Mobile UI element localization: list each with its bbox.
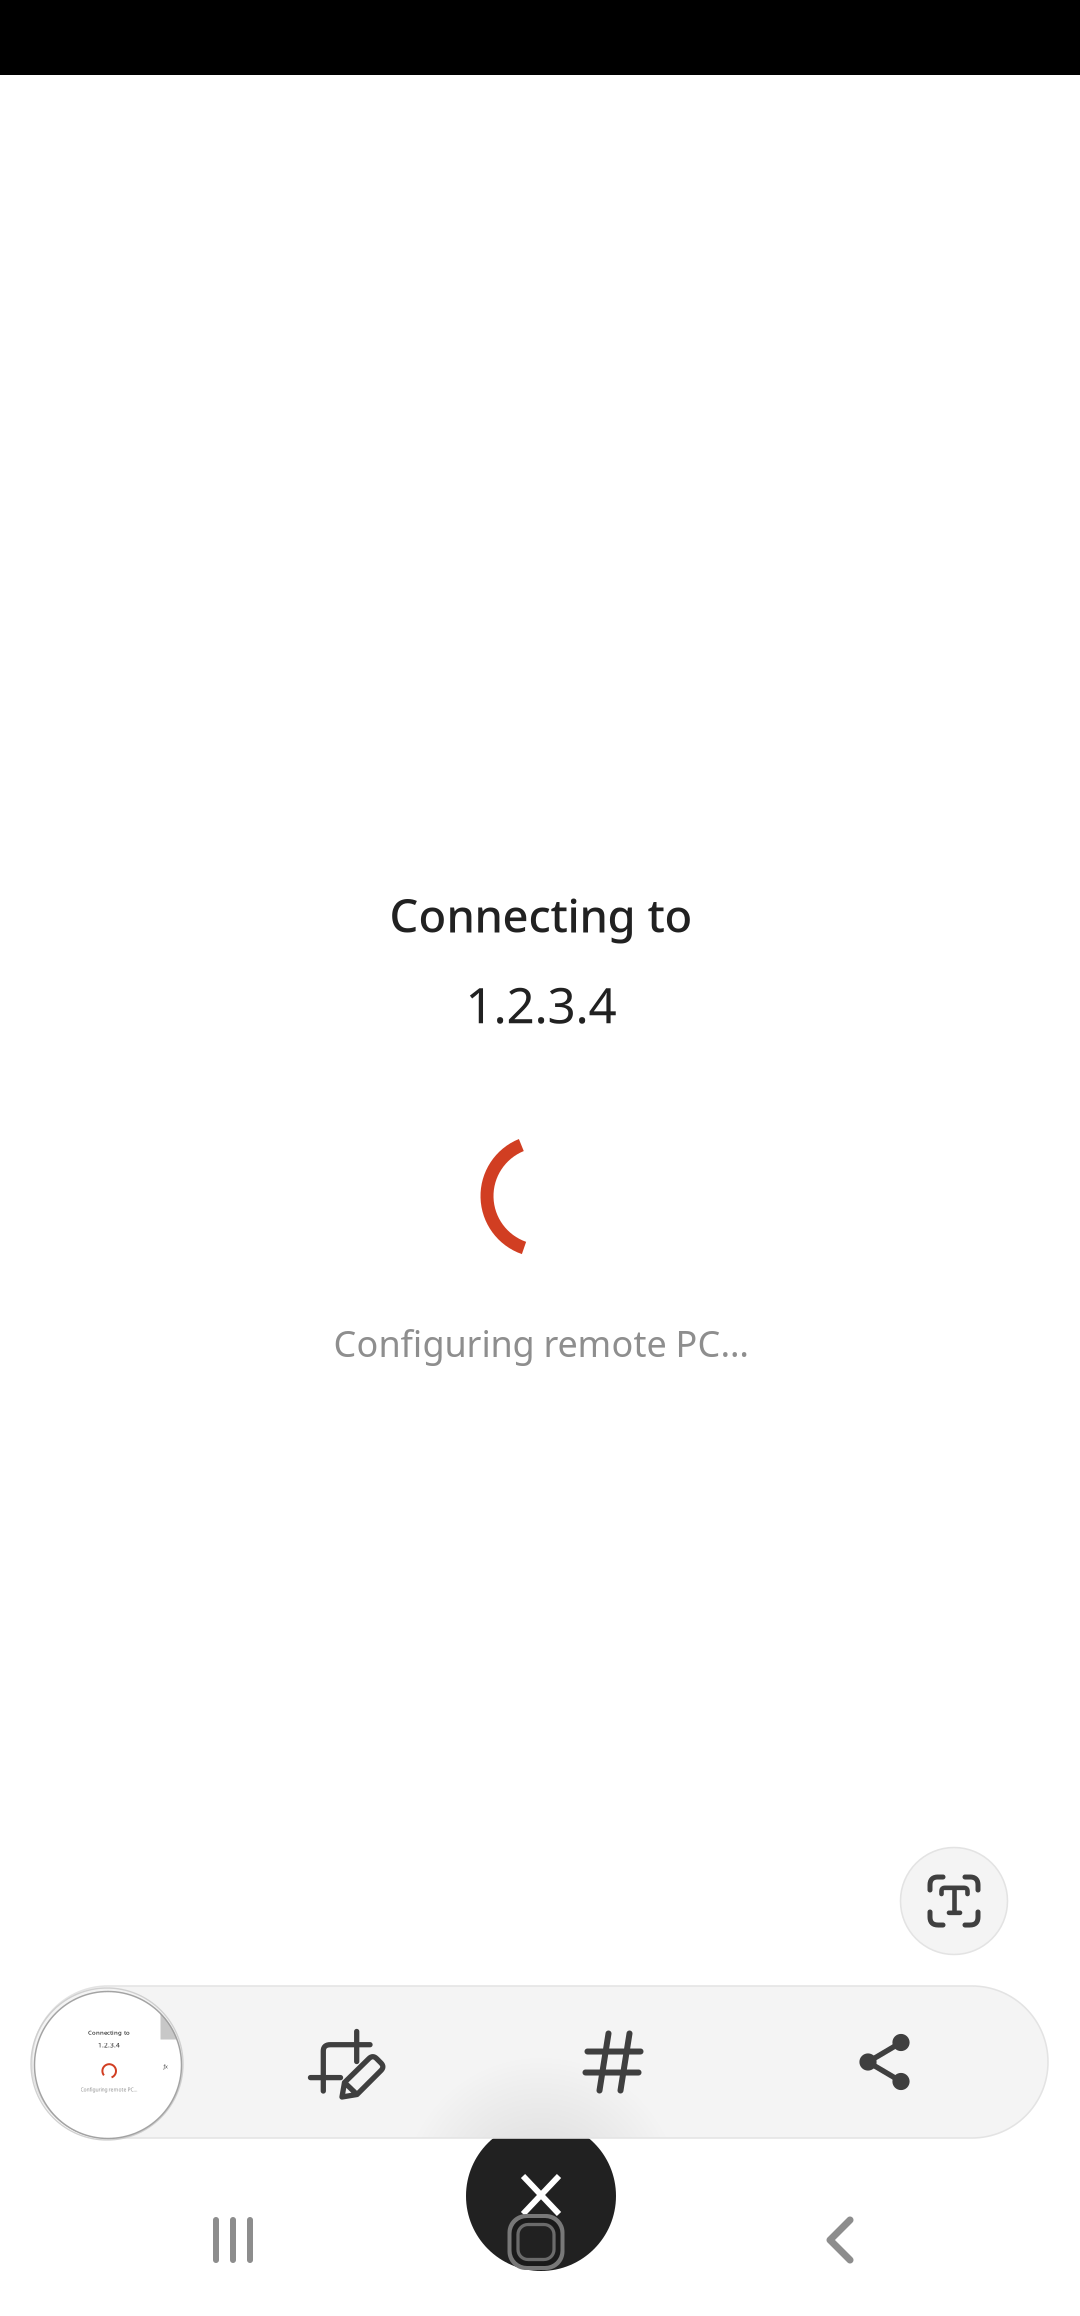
staticText: Connecting to [88,2028,130,2037]
staticText: Connecting to [389,885,692,945]
button[interactable]: Close [466,2121,616,2271]
button[interactable]: Extract text [900,1847,1007,1954]
button[interactable]: Share [860,2033,910,2090]
staticText: 1.2.3.4 [465,971,616,1037]
button[interactable]: Back [826,2217,854,2263]
staticText: 1.2.3.4 [98,2040,120,2050]
button[interactable]: Crop and edit [309,2030,386,2101]
staticText: ƒx [163,2063,168,2070]
button[interactable]: Screenshot preview [34,1991,181,2138]
button[interactable]: Recents [213,2217,253,2263]
button[interactable]: Add tag [584,2030,643,2093]
staticText: Configuring remote PC… [80,2086,137,2093]
staticText: Configuring remote PC… [333,1319,748,1367]
